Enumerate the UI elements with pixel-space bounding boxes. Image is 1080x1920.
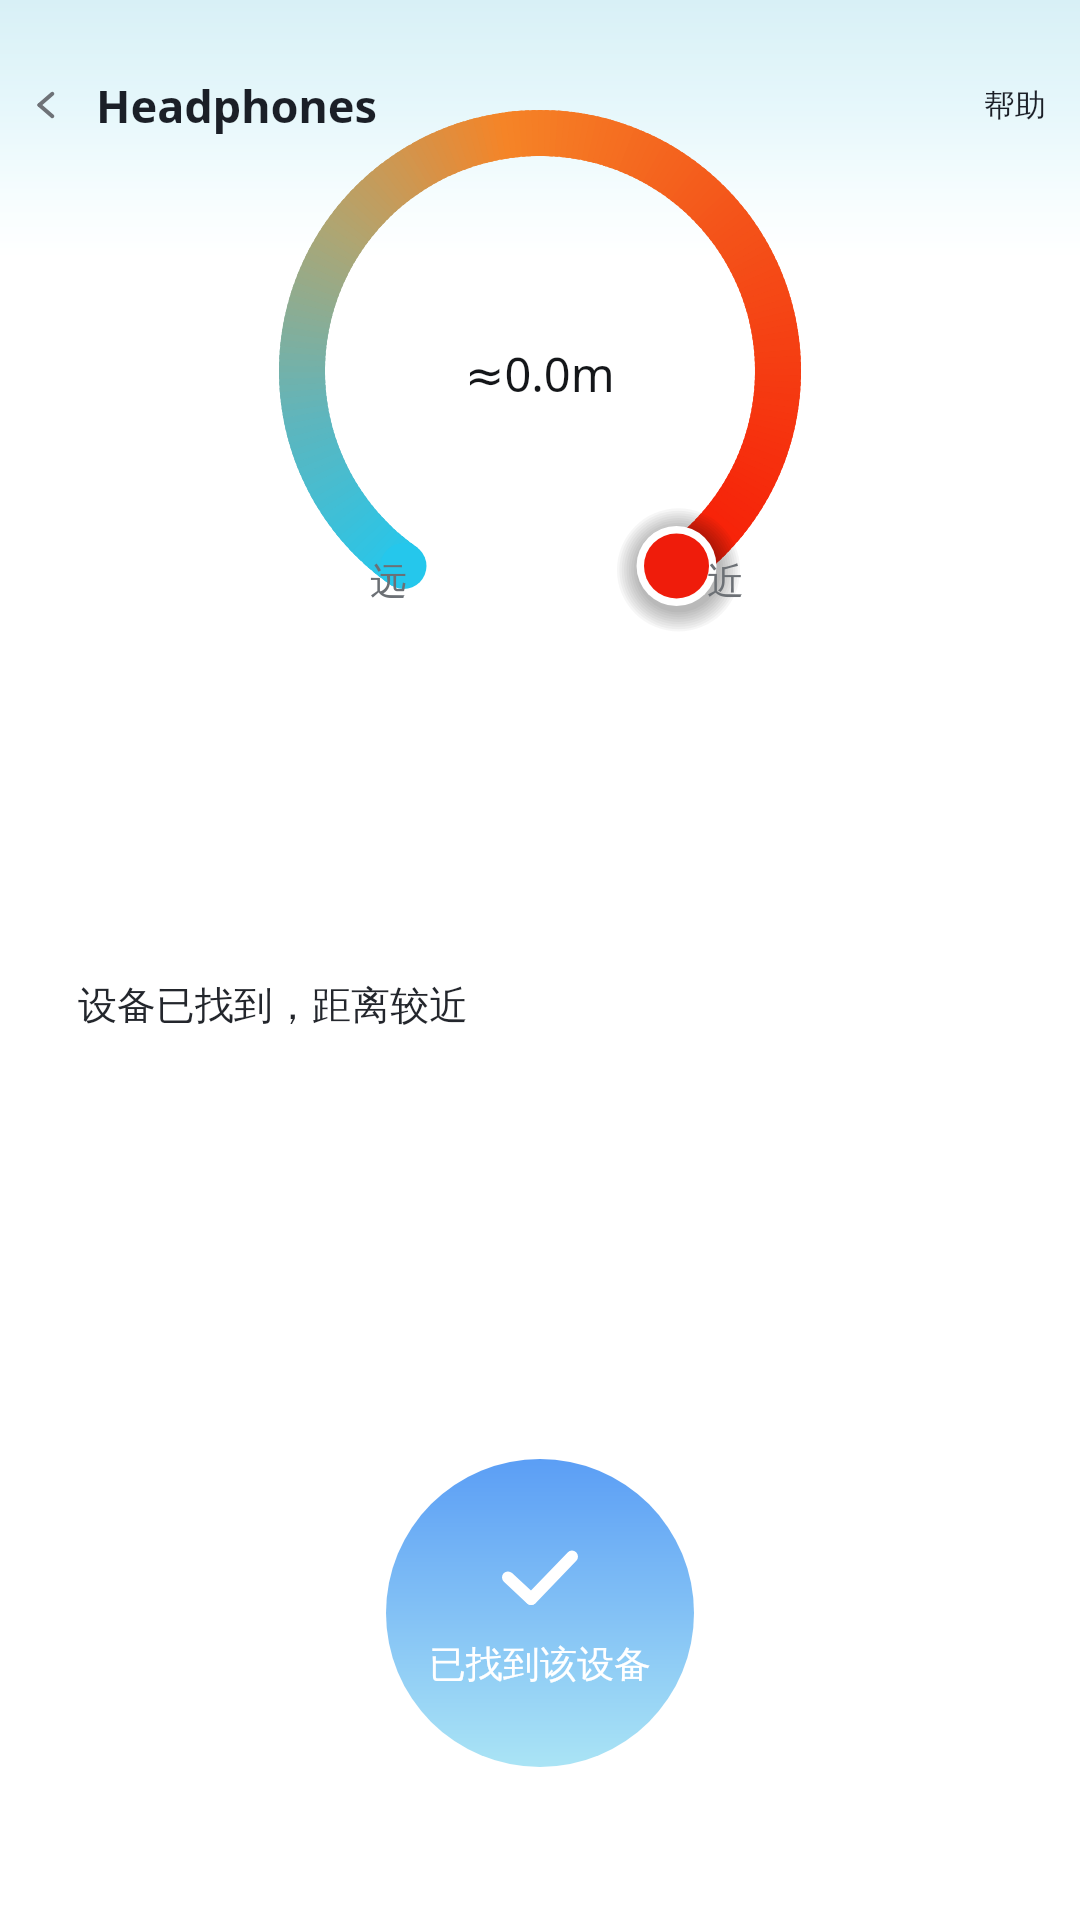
staticText: 远 xyxy=(370,558,407,605)
staticText: 近 xyxy=(707,558,744,605)
button[interactable]: 帮助 xyxy=(950,66,1080,145)
button[interactable]: Back xyxy=(10,67,86,143)
button[interactable]: 已找到该设备 xyxy=(386,1459,694,1767)
button[interactable]: 设备已找到，距离较近 xyxy=(40,938,1040,1072)
staticText: ≈0.0m xyxy=(465,342,615,406)
staticText: 已找到该设备 xyxy=(429,1641,651,1688)
staticText: 设备已找到，距离较近 xyxy=(78,981,468,1030)
staticText: 帮助 xyxy=(984,86,1046,125)
staticText: Headphones xyxy=(96,75,378,136)
